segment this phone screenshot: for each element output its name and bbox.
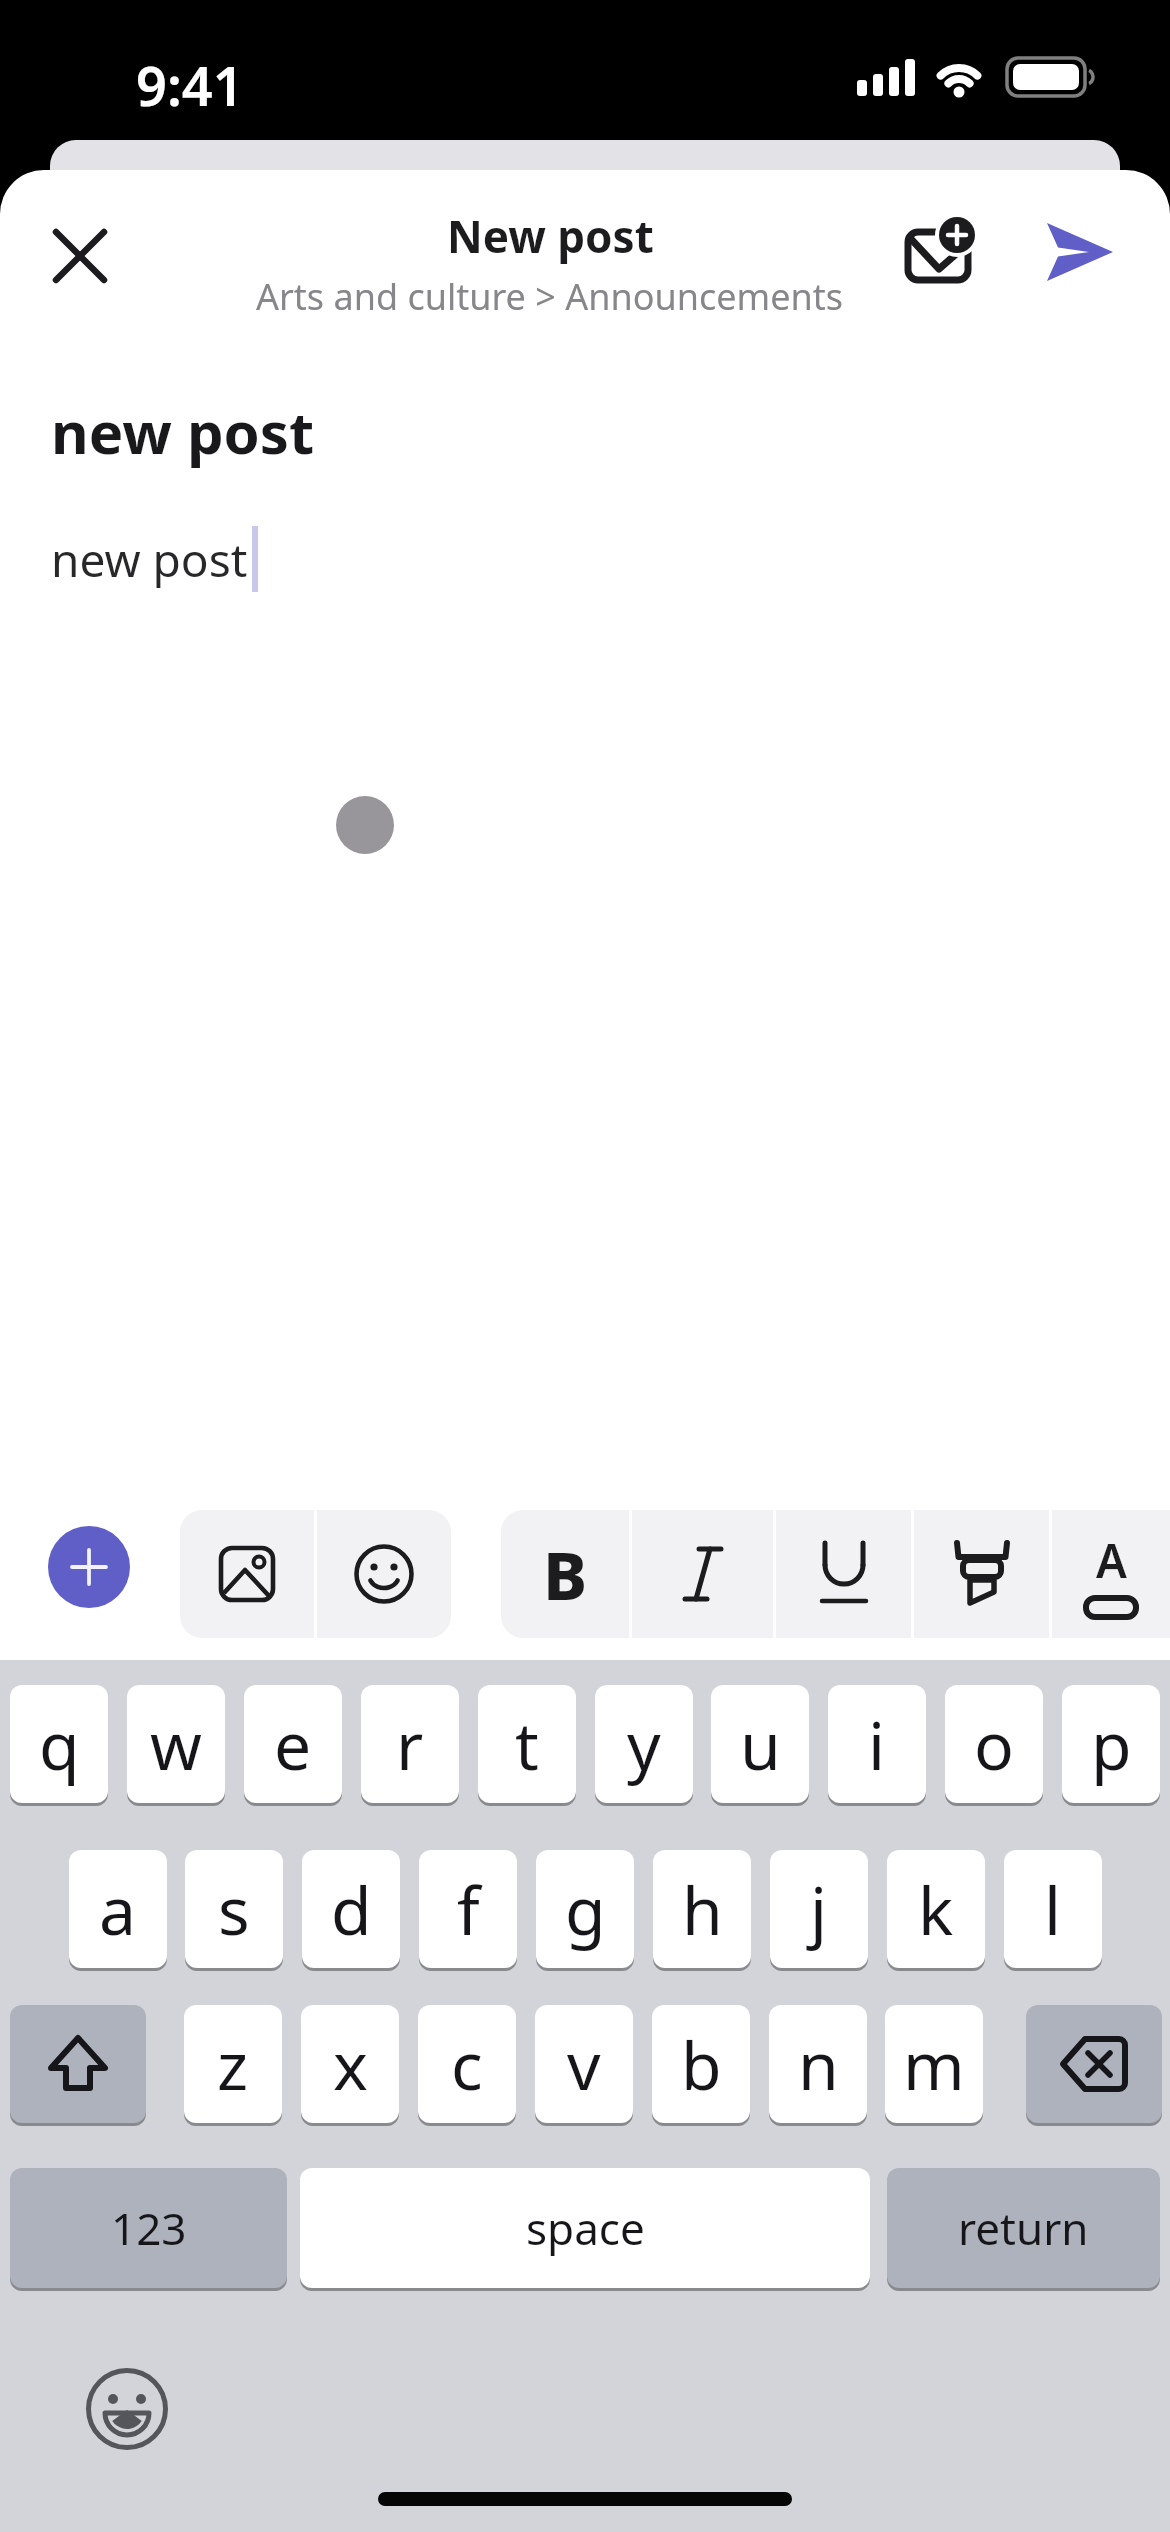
staticText: 123: [111, 2198, 187, 2258]
button[interactable]: [30, 206, 130, 306]
staticText: 9:41: [136, 48, 244, 122]
button[interactable]: n: [769, 2005, 867, 2123]
button[interactable]: [1020, 202, 1140, 302]
button[interactable]: return: [887, 2168, 1160, 2288]
button[interactable]: y: [595, 1685, 693, 1803]
staticText: l: [1044, 1864, 1062, 1954]
button[interactable]: [180, 1510, 314, 1638]
staticText: a: [99, 1864, 137, 1954]
staticText: A: [1096, 1529, 1127, 1592]
button[interactable]: [1026, 2005, 1162, 2123]
button[interactable]: i: [828, 1685, 926, 1803]
staticText: h: [682, 1864, 723, 1954]
button[interactable]: d: [302, 1850, 400, 1968]
button[interactable]: 123: [10, 2168, 287, 2288]
button[interactable]: u: [711, 1685, 809, 1803]
button[interactable]: [317, 1510, 451, 1638]
staticText: x: [333, 2019, 368, 2109]
button[interactable]: l: [1004, 1850, 1102, 1968]
button[interactable]: A: [1052, 1510, 1170, 1638]
staticText: v: [567, 2019, 601, 2109]
staticText: z: [217, 2019, 249, 2109]
staticText: t: [515, 1699, 539, 1789]
button[interactable]: w: [127, 1685, 225, 1803]
staticText: New post: [447, 206, 654, 266]
staticText: o: [974, 1699, 1014, 1789]
button[interactable]: [87, 2369, 167, 2449]
staticText: B: [543, 1529, 588, 1619]
button[interactable]: [10, 2005, 146, 2123]
button[interactable]: p: [1062, 1685, 1160, 1803]
button[interactable]: [632, 1510, 773, 1638]
button[interactable]: c: [418, 2005, 516, 2123]
staticText: q: [39, 1699, 80, 1789]
button[interactable]: [776, 1510, 911, 1638]
staticText: f: [457, 1864, 480, 1954]
staticText: i: [868, 1699, 886, 1789]
button[interactable]: space: [300, 2168, 870, 2288]
button[interactable]: [914, 1510, 1049, 1638]
staticText: y: [627, 1699, 661, 1789]
staticText: g: [565, 1864, 606, 1954]
staticText: space: [526, 2198, 645, 2258]
staticText: c: [451, 2019, 483, 2109]
staticText: new post: [51, 392, 315, 471]
staticText: u: [740, 1699, 781, 1789]
staticText: n: [798, 2019, 839, 2109]
staticText: Arts and culture > Announcements: [256, 272, 844, 321]
staticText: m: [903, 2019, 965, 2109]
staticText: j: [810, 1864, 828, 1954]
button[interactable]: B: [501, 1510, 629, 1638]
button[interactable]: h: [653, 1850, 751, 1968]
button[interactable]: e: [244, 1685, 342, 1803]
staticText: w: [150, 1699, 202, 1789]
button[interactable]: f: [419, 1850, 517, 1968]
staticText: e: [274, 1699, 312, 1789]
button[interactable]: r: [361, 1685, 459, 1803]
button[interactable]: k: [887, 1850, 985, 1968]
button[interactable]: o: [945, 1685, 1043, 1803]
staticText: d: [331, 1864, 372, 1954]
staticText: s: [218, 1864, 250, 1954]
button[interactable]: z: [184, 2005, 282, 2123]
staticText: return: [958, 2198, 1089, 2258]
staticText: r: [396, 1699, 424, 1789]
staticText: p: [1091, 1699, 1132, 1789]
button[interactable]: a: [69, 1850, 167, 1968]
staticText: new post: [51, 528, 248, 591]
button[interactable]: s: [185, 1850, 283, 1968]
button[interactable]: g: [536, 1850, 634, 1968]
button[interactable]: x: [301, 2005, 399, 2123]
button[interactable]: [48, 1526, 130, 1608]
button[interactable]: b: [652, 2005, 750, 2123]
button[interactable]: j: [770, 1850, 868, 1968]
button[interactable]: v: [535, 2005, 633, 2123]
button[interactable]: m: [885, 2005, 983, 2123]
button[interactable]: [890, 202, 994, 302]
staticText: b: [681, 2019, 722, 2109]
button[interactable]: t: [478, 1685, 576, 1803]
staticText: k: [918, 1864, 954, 1954]
button[interactable]: q: [10, 1685, 108, 1803]
